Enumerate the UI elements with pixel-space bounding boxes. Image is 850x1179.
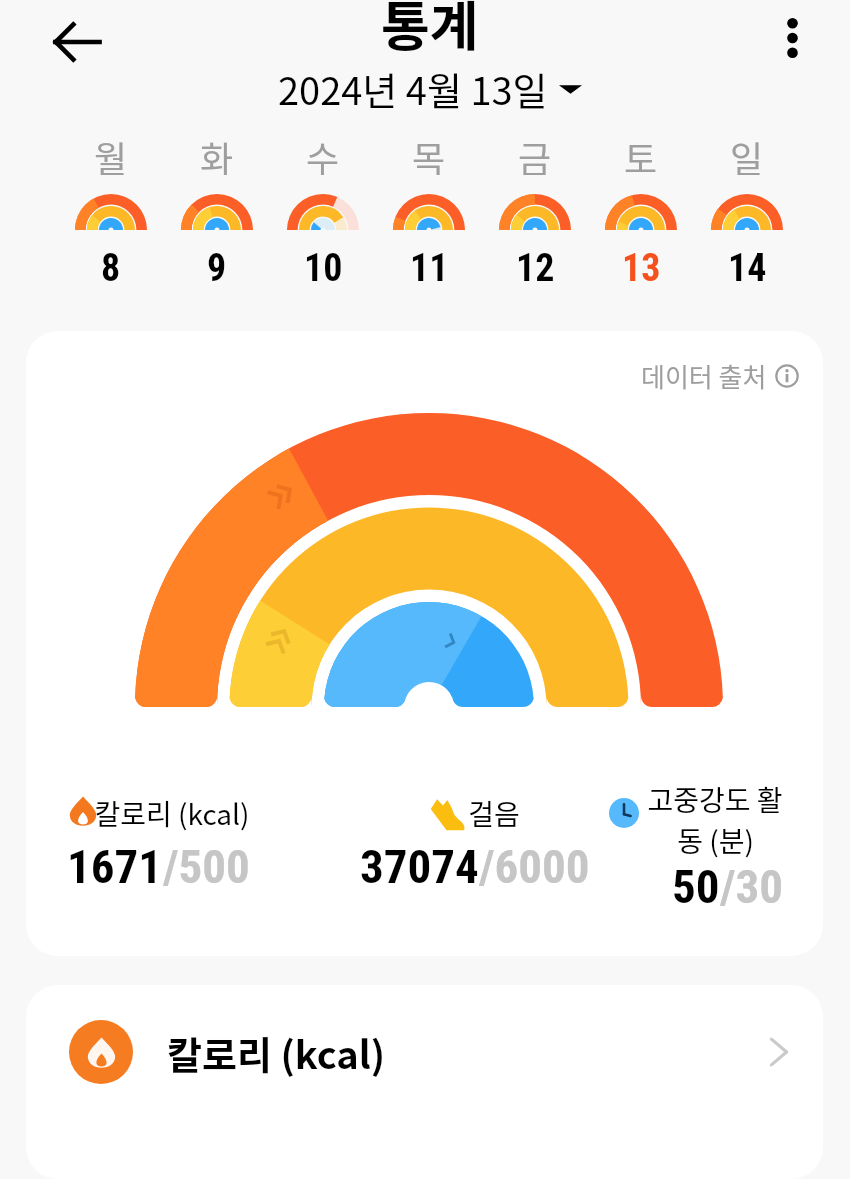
staticText: 칼로리 (kcal) [167,1025,386,1080]
button[interactable]: 화 [164,131,270,291]
button[interactable]: 37074 [295,839,655,894]
button[interactable]: 수 [270,131,376,291]
button[interactable]: 토 [588,131,694,291]
button[interactable]: 칼로리 (kcal) [26,793,352,834]
staticText: 토 [624,131,658,175]
button[interactable]: 1671 [26,839,338,894]
staticText: 월 [94,131,128,175]
button[interactable]: 2024년 4월 13일 [278,61,582,116]
button[interactable]: 걸음 [314,793,674,834]
staticText: 금 [518,131,552,175]
staticText: 통계 [381,0,479,62]
button[interactable]: 금 [482,131,588,291]
staticText: 12 [516,246,555,291]
staticText: 13 [622,246,661,291]
staticText: 수 [306,131,340,175]
staticText: 50 [672,859,720,914]
button[interactable]: 고중강도 활 [535,779,823,861]
staticText: /500 [163,839,250,894]
button[interactable]: 데이터 출처 [641,357,799,395]
staticText: 9 [207,246,227,291]
staticText: 목 [412,131,446,175]
staticText: 데이터 출처 [641,357,767,395]
staticText: 14 [728,246,767,291]
button[interactable]: 일 [694,131,800,291]
staticText: 11 [410,246,449,291]
staticText: 걸음 [468,793,520,834]
button[interactable]: 칼로리 (kcal) [69,985,788,1119]
button[interactable]: 월 [58,131,164,291]
staticText: 2024년 4월 13일 [278,61,548,116]
staticText: 37074 [360,839,479,894]
staticText: /6000 [479,839,590,894]
staticText: 8 [101,246,121,291]
staticText: 고중강도 활 [647,779,783,820]
button[interactable]: More options [748,0,836,82]
button[interactable]: Back [33,0,121,86]
staticText: 일 [730,131,764,175]
button[interactable]: 목 [376,131,482,291]
staticText: 1671 [67,839,163,894]
staticText: 동 (분) [677,820,754,861]
staticText: 칼로리 (kcal) [94,793,250,834]
staticText: 화 [200,131,234,175]
button[interactable]: 50 [548,859,823,914]
staticText: /30 [720,859,784,914]
staticText: 10 [304,246,343,291]
